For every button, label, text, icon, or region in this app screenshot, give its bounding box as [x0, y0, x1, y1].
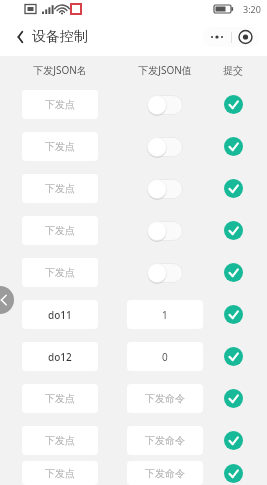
button[interactable]: Submit — [216, 461, 250, 485]
staticText: 下发点 — [45, 266, 75, 279]
button[interactable]: Submit — [216, 83, 250, 125]
staticText: 下发命令 — [145, 434, 185, 447]
button[interactable]: Toggle — [147, 179, 183, 199]
button[interactable]: 下发命令 — [127, 384, 203, 413]
button[interactable]: Submit — [216, 377, 250, 419]
button[interactable]: Submit — [216, 419, 250, 461]
button[interactable]: 下发点 — [22, 174, 98, 203]
button[interactable]: 下发点 — [22, 216, 98, 245]
staticText: 0 — [162, 350, 168, 364]
staticText: 提交 — [216, 64, 250, 77]
button[interactable]: 1 — [127, 300, 203, 329]
button[interactable]: Toggle — [147, 221, 183, 241]
button[interactable]: Submit — [216, 251, 250, 293]
button[interactable]: 下发点 — [22, 258, 98, 287]
staticText: 下发点 — [45, 467, 75, 480]
button[interactable]: do12 — [22, 342, 98, 371]
staticText: 下发点 — [45, 140, 75, 153]
button[interactable]: Back — [8, 24, 34, 50]
staticText: 下发命令 — [145, 467, 185, 480]
button[interactable]: Submit — [216, 335, 250, 377]
button[interactable]: Submit — [216, 209, 250, 251]
button[interactable]: Back — [0, 286, 14, 314]
button[interactable]: 下发点 — [22, 132, 98, 161]
staticText: 设备控制 — [32, 28, 88, 46]
button[interactable]: 下发点 — [22, 426, 98, 455]
staticText: 下发命令 — [145, 392, 185, 405]
button[interactable]: Target — [232, 27, 259, 47]
staticText: 下发点 — [45, 182, 75, 195]
button[interactable]: More options — [203, 27, 231, 47]
staticText: 下发JSON值 — [127, 63, 203, 77]
staticText: 下发点 — [45, 224, 75, 237]
button[interactable]: 下发命令 — [127, 461, 203, 485]
staticText: do11 — [48, 308, 72, 322]
button[interactable]: 0 — [127, 342, 203, 371]
staticText: do12 — [48, 350, 72, 364]
button[interactable]: Toggle — [147, 137, 183, 157]
staticText: 3:20 — [243, 3, 261, 15]
button[interactable]: 下发命令 — [127, 426, 203, 455]
button[interactable]: Toggle — [147, 263, 183, 283]
staticText: 1 — [162, 308, 168, 322]
button[interactable]: Toggle — [147, 95, 183, 115]
button[interactable]: do11 — [22, 300, 98, 329]
button[interactable]: Submit — [216, 125, 250, 167]
staticText: 下发点 — [45, 434, 75, 447]
staticText: 下发JSON名 — [22, 63, 98, 77]
staticText: 下发点 — [45, 98, 75, 111]
button[interactable]: Submit — [216, 167, 250, 209]
button[interactable]: 下发点 — [22, 384, 98, 413]
button[interactable]: Submit — [216, 293, 250, 335]
staticText: 下发点 — [45, 392, 75, 405]
button[interactable]: 下发点 — [22, 461, 98, 485]
button[interactable]: 下发点 — [22, 90, 98, 119]
